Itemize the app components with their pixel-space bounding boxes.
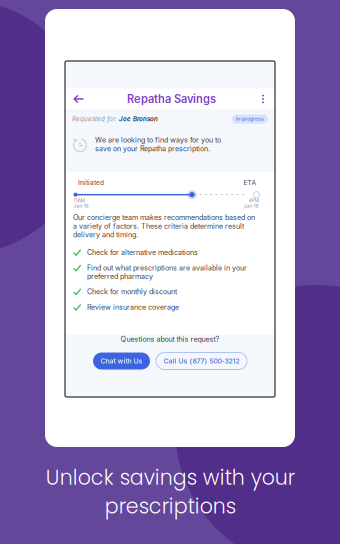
staticText: We are looking to find ways for you to s…: [95, 136, 221, 153]
staticText: 4PM: [248, 197, 258, 203]
staticText: Call Us (877) 500-3212: [163, 357, 239, 365]
staticText: ETA: [243, 179, 256, 186]
button[interactable]: Back: [70, 90, 87, 108]
button[interactable]: Chat with Us: [93, 352, 150, 369]
staticText: Find out what prescriptions are availabl…: [87, 263, 247, 281]
staticText: 11AM: [73, 197, 84, 203]
staticText: Check for monthly discount: [87, 287, 177, 296]
staticText: Questions about this request?: [120, 335, 219, 343]
staticText: Check for alternative medications: [87, 248, 198, 257]
staticText: Requested for:: [72, 115, 119, 123]
button[interactable]: Call Us (877) 500-3212: [156, 352, 247, 369]
staticText: Chat with Us: [100, 357, 142, 365]
staticText: Initiated: [78, 179, 104, 186]
staticText: Our concierge team makes recommendations…: [73, 213, 255, 239]
staticText: Joe Bronson: [119, 115, 158, 123]
staticText: Review insurance coverage: [87, 303, 179, 311]
staticText: Jan 16: [73, 203, 88, 209]
staticText: In-progress: [236, 116, 264, 122]
staticText: Jan 16: [243, 203, 258, 209]
staticText: Unlock savings with your prescriptions: [45, 463, 294, 521]
staticText: Repatha Savings: [127, 92, 216, 106]
button[interactable]: More options: [256, 90, 270, 108]
